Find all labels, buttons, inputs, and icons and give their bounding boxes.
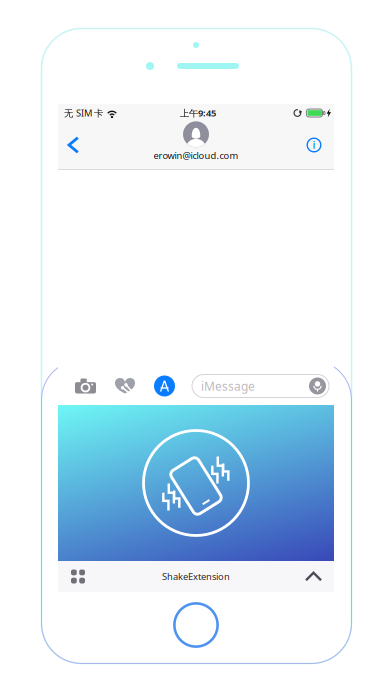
staticText: ShakeExtension — [162, 570, 230, 583]
staticText: iMessage — [201, 378, 255, 394]
staticText: erowin@icloud.com — [153, 149, 238, 162]
button[interactable]: iMessage — [192, 374, 329, 397]
button[interactable]: Expand — [293, 562, 334, 591]
button[interactable]: App Store — [145, 367, 192, 404]
button[interactable]: Back — [58, 128, 92, 162]
button[interactable]: Digital Touch — [105, 367, 145, 404]
button[interactable]: Apps — [58, 561, 98, 591]
button[interactable]: Details — [292, 127, 334, 162]
staticText: 无 SIM 卡 — [64, 107, 103, 119]
staticText: i — [312, 138, 315, 152]
button[interactable]: Contact avatar — [183, 121, 209, 147]
staticText: 上午9:45 — [180, 107, 216, 119]
button[interactable]: Camera — [58, 367, 105, 404]
